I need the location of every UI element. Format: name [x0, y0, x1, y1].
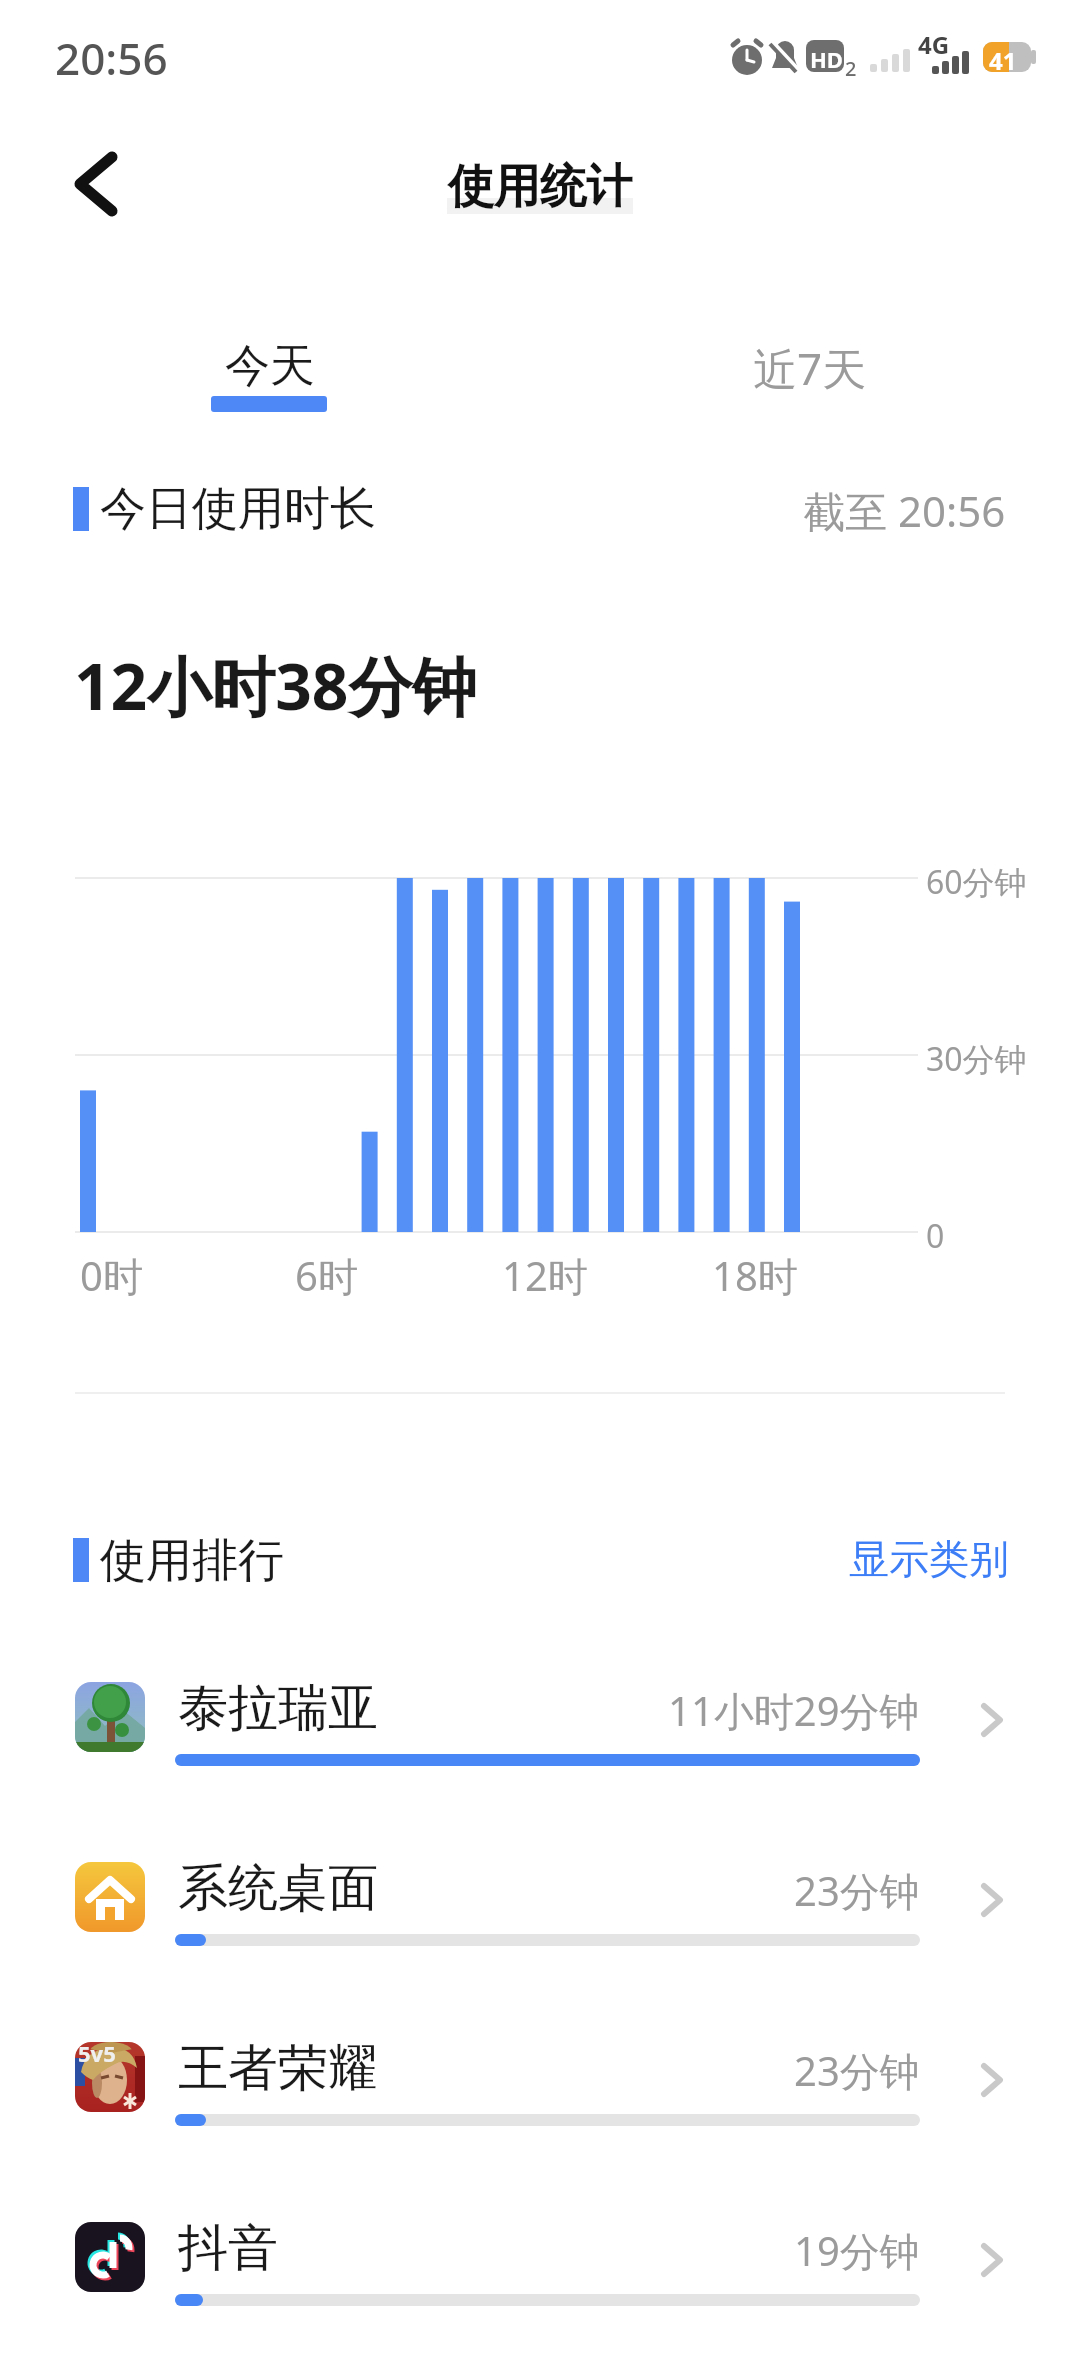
staticText: 19分钟: [794, 2223, 920, 2278]
staticText: 显示类别: [849, 1534, 1009, 1584]
staticText: 41: [989, 44, 1017, 77]
staticText: 23分钟: [794, 2043, 920, 2098]
staticText: 使用统计: [448, 158, 632, 216]
staticText: 2: [845, 55, 857, 82]
button[interactable]: 泰拉瑞亚: [40, 1670, 1040, 1834]
staticText: 6时: [295, 1248, 358, 1303]
staticText: 5v5: [78, 2042, 116, 2068]
staticText: 抖音: [178, 2217, 278, 2280]
staticText: 泰拉瑞亚: [178, 1677, 378, 1740]
staticText: 0: [926, 1214, 945, 1258]
staticText: 系统桌面: [178, 1857, 378, 1920]
button[interactable]: 5v5: [40, 2030, 1040, 2194]
staticText: 0时: [80, 1248, 143, 1303]
staticText: 23分钟: [794, 1863, 920, 1918]
staticText: 今日使用时长: [100, 480, 376, 538]
button[interactable]: [0, 330, 540, 414]
button[interactable]: 显示类别: [819, 1528, 1009, 1590]
staticText: 20:56: [55, 28, 168, 88]
staticText: HD: [810, 44, 843, 74]
staticText: 4G: [918, 28, 950, 61]
button[interactable]: 抖音: [40, 2210, 1040, 2374]
staticText: 60分钟: [926, 860, 1027, 904]
staticText: 今天: [225, 338, 315, 395]
button[interactable]: [540, 330, 1080, 414]
staticText: 12时: [502, 1248, 588, 1303]
staticText: 王者荣耀: [178, 2037, 378, 2100]
staticText: 12小时38分钟: [74, 642, 477, 729]
staticText: 30分钟: [926, 1037, 1027, 1081]
staticText: 近7天: [753, 338, 867, 398]
button[interactable]: 系统桌面: [40, 1850, 1040, 2014]
staticText: 11小时29分钟: [668, 1683, 920, 1738]
staticText: 截至 20:56: [803, 482, 1006, 539]
staticText: 使用排行: [100, 1532, 284, 1590]
staticText: 18时: [712, 1248, 798, 1303]
button[interactable]: [50, 140, 140, 230]
